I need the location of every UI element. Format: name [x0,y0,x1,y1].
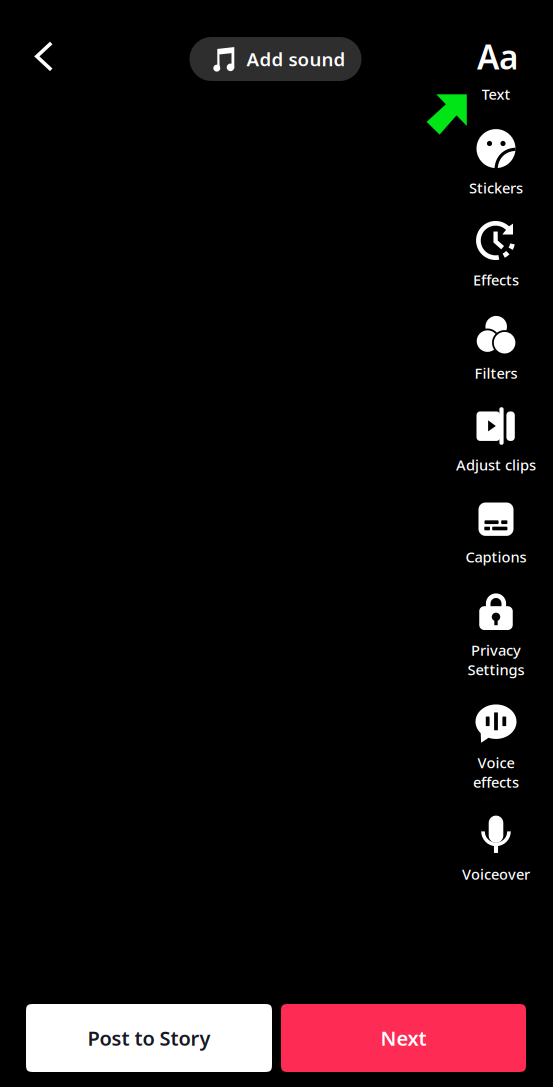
button[interactable]: Back [16,28,72,84]
button[interactable]: Privacy Settings [476,591,516,631]
button[interactable]: Effects [476,220,516,260]
button[interactable]: Text [446,34,546,78]
button[interactable]: Filters [476,313,516,353]
button[interactable]: Add sound [189,37,361,81]
staticText: Effects [473,270,519,290]
staticText: Stickers [469,178,523,198]
staticText: Post to Story [87,1025,210,1051]
staticText: Voice [477,753,514,772]
button[interactable]: Post to Story [26,1004,272,1072]
button[interactable]: Stickers [476,129,516,169]
staticText: Settings [467,660,524,679]
button[interactable]: Adjust clips [476,406,516,446]
button[interactable]: Voice effects [475,704,516,743]
button[interactable]: Next [281,1004,526,1072]
staticText: Filters [474,363,517,383]
staticText: Text [481,84,510,104]
staticText: Adjust clips [456,455,536,474]
staticText: Next [380,1025,426,1051]
staticText: Voiceover [462,864,530,884]
staticText: Captions [465,547,526,567]
staticText: Aa [477,34,519,79]
button[interactable]: Voiceover [481,816,511,853]
staticText: Privacy [471,640,521,660]
button[interactable]: Captions [478,502,513,536]
staticText: Add sound [246,47,345,71]
staticText: effects [473,772,519,792]
